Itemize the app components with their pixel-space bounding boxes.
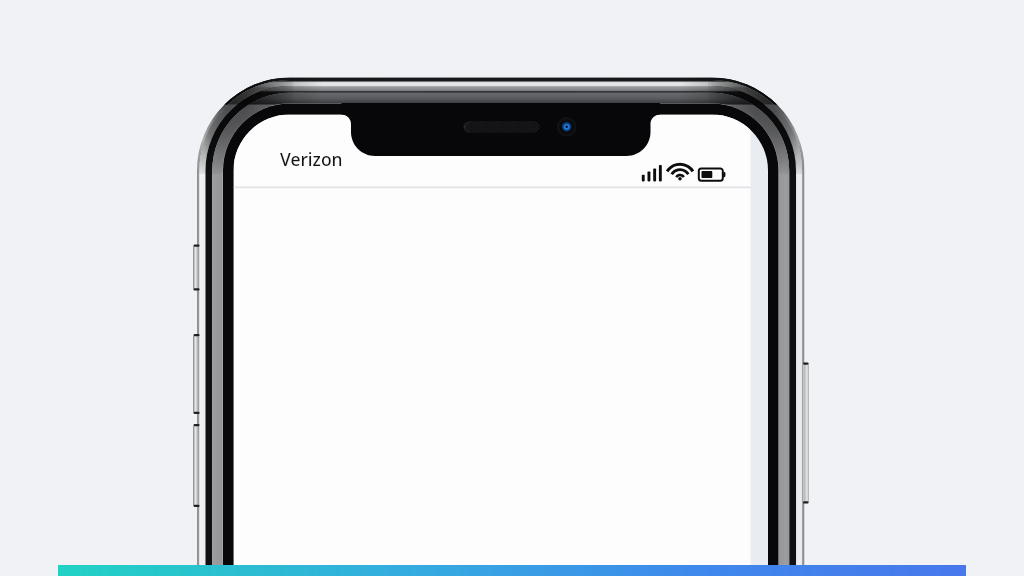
- button[interactable]: Verizon: [280, 147, 343, 171]
- staticText: Verizon: [280, 147, 343, 171]
